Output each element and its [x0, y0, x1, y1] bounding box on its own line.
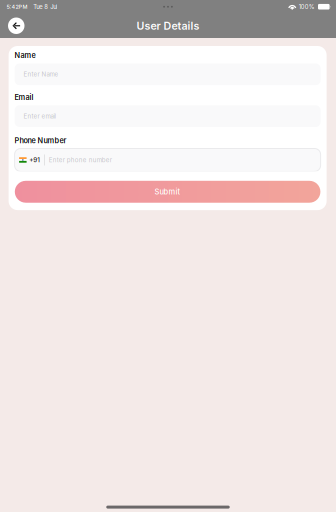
staticText: Enter Name — [24, 71, 59, 78]
staticText: 100% — [299, 3, 315, 10]
staticText: 5:42PM — [6, 3, 27, 10]
button[interactable]: Back — [8, 17, 24, 34]
staticText: User Details — [136, 19, 199, 32]
staticText: Enter email — [24, 112, 56, 120]
staticText: Phone Number — [15, 136, 67, 145]
button[interactable]: Enter email — [15, 105, 321, 127]
staticText: Email — [15, 93, 34, 102]
button[interactable]: Submit — [15, 181, 320, 203]
button[interactable]: Enter Name — [15, 63, 321, 85]
staticText: Enter phone number — [49, 156, 112, 164]
staticText: Tue 8 Jul — [33, 3, 57, 10]
staticText: +91 — [29, 156, 40, 164]
staticText: Name — [15, 51, 36, 60]
staticText: Submit — [155, 187, 181, 196]
button[interactable]: +91 — [15, 148, 321, 171]
